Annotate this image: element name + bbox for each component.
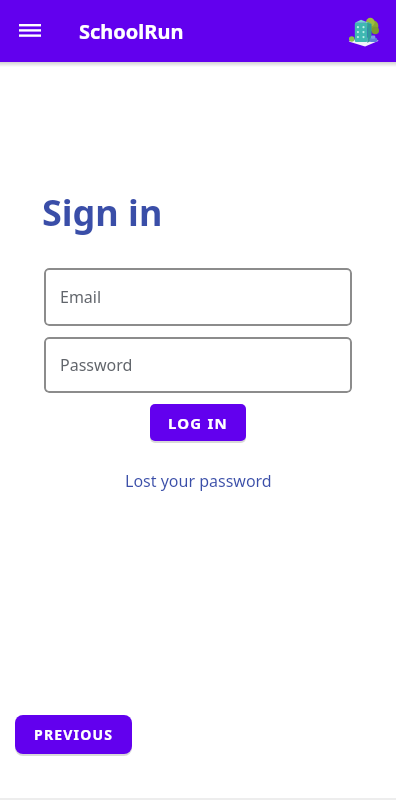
button[interactable] [16, 17, 44, 45]
button[interactable]: Lost your password [125, 470, 272, 492]
button[interactable] [348, 16, 379, 47]
staticText: Sign in [42, 188, 163, 237]
button[interactable]: PREVIOUS [15, 715, 132, 754]
button[interactable]: Email [44, 268, 352, 326]
button[interactable]: LOG IN [150, 404, 246, 441]
staticText: PREVIOUS [34, 725, 114, 744]
button[interactable]: Password [44, 337, 352, 393]
staticText: Email [60, 286, 102, 308]
staticText: Password [60, 354, 133, 376]
staticText: SchoolRun [79, 18, 184, 45]
staticText: LOG IN [168, 413, 228, 433]
